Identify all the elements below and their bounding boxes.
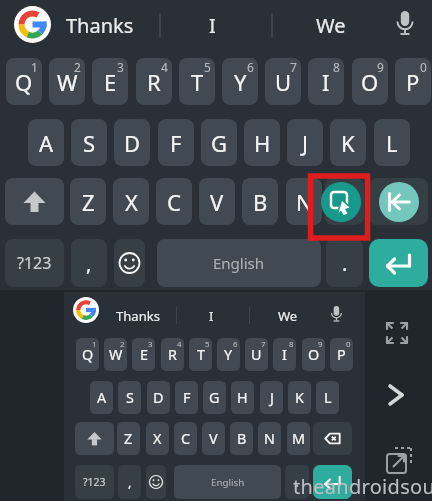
button[interactable]: A [28, 119, 64, 166]
button[interactable]: Thanks [110, 302, 165, 329]
button[interactable]: I [308, 58, 344, 105]
button[interactable]: L [316, 381, 339, 414]
button[interactable]: Y [217, 338, 240, 371]
button[interactable]: K [288, 381, 311, 414]
button[interactable] [325, 178, 364, 225]
button[interactable]: . [326, 239, 363, 287]
button[interactable]: W [104, 338, 127, 371]
button[interactable]: P [395, 58, 431, 105]
button[interactable] [386, 383, 408, 407]
button[interactable]: O [352, 58, 388, 105]
button[interactable]: R [136, 58, 172, 105]
button[interactable]: R [161, 338, 184, 371]
button[interactable] [14, 6, 51, 43]
button[interactable]: B [242, 178, 278, 225]
button[interactable]: N [286, 178, 322, 225]
staticText: Z [82, 187, 95, 217]
button[interactable]: We [265, 302, 311, 329]
button[interactable] [5, 178, 64, 225]
button[interactable]: , [118, 465, 141, 499]
button[interactable]: C [174, 422, 197, 455]
staticText: 1 [31, 59, 38, 75]
button[interactable]: V [199, 178, 235, 225]
button[interactable]: H [231, 381, 254, 414]
staticText: Thanks [66, 12, 134, 39]
staticText: L [386, 128, 398, 158]
button[interactable]: M [287, 422, 310, 455]
button[interactable]: T [179, 58, 215, 105]
button[interactable] [114, 239, 145, 287]
button[interactable]: ?123 [75, 465, 114, 499]
button[interactable]: X [113, 178, 149, 225]
staticText: W [109, 345, 123, 365]
button[interactable]: ?123 [5, 239, 64, 287]
button[interactable]: , [71, 239, 107, 287]
button[interactable]: G [201, 119, 237, 166]
button[interactable]: F [175, 381, 198, 414]
button[interactable]: English [157, 239, 321, 287]
button[interactable]: P [330, 338, 353, 371]
staticText: B [237, 429, 247, 449]
button[interactable]: Y [222, 58, 258, 105]
button[interactable] [75, 422, 114, 455]
button[interactable]: Q [6, 58, 42, 105]
staticText: U [251, 345, 262, 365]
button[interactable]: D [114, 119, 150, 166]
button[interactable]: F [158, 119, 194, 166]
staticText: 8 [333, 59, 340, 75]
staticText: , [86, 250, 92, 277]
staticText: Q [82, 345, 94, 365]
button[interactable]: S [118, 381, 141, 414]
staticText: ?123 [17, 252, 52, 274]
staticText: L [324, 388, 332, 408]
button[interactable] [146, 465, 166, 499]
button[interactable] [313, 465, 352, 499]
button[interactable]: E [132, 338, 155, 371]
button[interactable] [385, 446, 414, 475]
button[interactable]: U [265, 58, 301, 105]
button[interactable] [321, 182, 361, 222]
button[interactable]: K [330, 119, 366, 166]
button[interactable]: J [260, 381, 283, 414]
button[interactable]: X [146, 422, 169, 455]
button[interactable]: T [189, 338, 212, 371]
button[interactable]: English [174, 465, 281, 499]
button[interactable] [384, 320, 410, 346]
button[interactable]: C [156, 178, 192, 225]
button[interactable]: B [230, 422, 253, 455]
staticText: 0 [420, 59, 427, 75]
button[interactable]: . [285, 465, 309, 499]
button[interactable]: D [147, 381, 170, 414]
button[interactable]: U [245, 338, 268, 371]
button[interactable] [369, 239, 428, 287]
button[interactable]: V [202, 422, 225, 455]
button[interactable]: L [374, 119, 410, 166]
button[interactable] [389, 8, 421, 42]
button[interactable]: E [92, 58, 128, 105]
button[interactable]: I [180, 6, 244, 44]
button[interactable]: Thanks [58, 6, 142, 44]
button[interactable] [326, 304, 347, 328]
button[interactable] [313, 422, 352, 455]
button[interactable]: I [273, 338, 296, 371]
button[interactable]: Z [70, 178, 106, 225]
button[interactable]: J [287, 119, 323, 166]
staticText: J [270, 388, 274, 408]
button[interactable]: N [258, 422, 281, 455]
button[interactable]: Z [117, 422, 140, 455]
button[interactable]: I [190, 302, 232, 329]
button[interactable] [379, 182, 419, 222]
button[interactable]: W [49, 58, 85, 105]
staticText: K [341, 128, 355, 158]
button[interactable]: Q [76, 338, 99, 371]
button[interactable]: O [302, 338, 325, 371]
staticText: S [83, 128, 96, 158]
staticText: F [170, 128, 182, 158]
button[interactable] [73, 297, 99, 323]
button[interactable]: H [244, 119, 280, 166]
button[interactable]: We [295, 6, 366, 44]
button[interactable]: G [203, 381, 226, 414]
button[interactable] [369, 178, 428, 225]
button[interactable]: A [90, 381, 113, 414]
button[interactable]: S [71, 119, 107, 166]
